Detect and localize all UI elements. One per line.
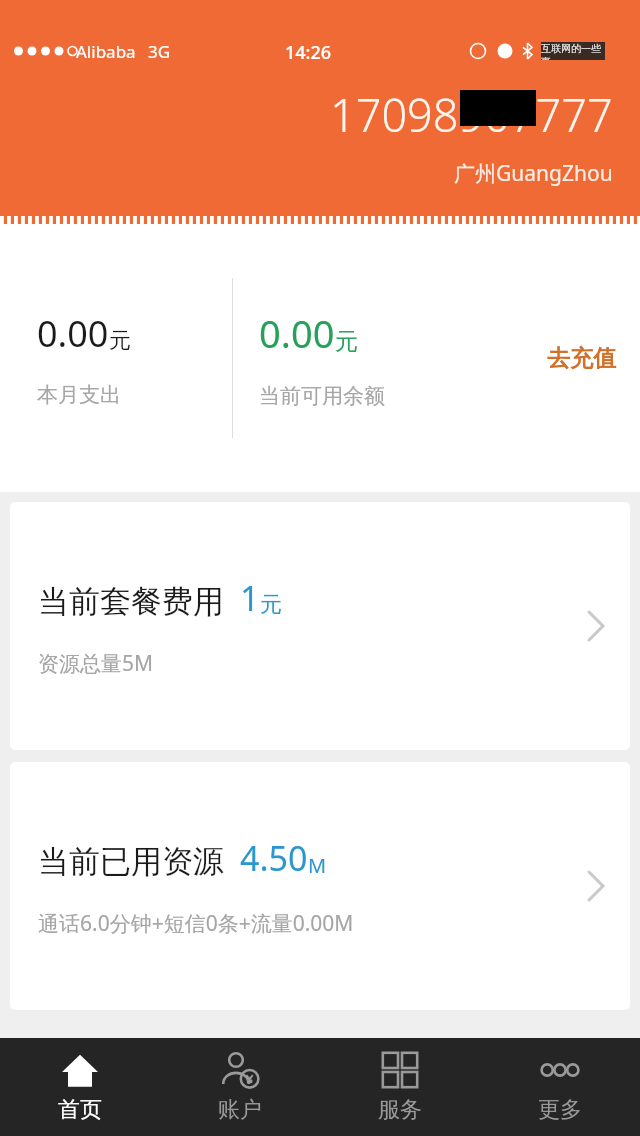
other: 更多 <box>540 1050 580 1090</box>
staticText: 1 <box>240 575 260 621</box>
staticText: 更多 <box>538 1096 582 1124</box>
staticText: 3G <box>148 40 171 62</box>
other: 首页 <box>60 1050 100 1090</box>
staticText: 4.50 <box>240 835 308 881</box>
staticText: 通话6.0分钟+短信0条+流量0.00M <box>38 909 354 938</box>
staticText: 当前套餐费用 <box>38 582 224 621</box>
button[interactable]: 服务 <box>320 1038 480 1136</box>
staticText: 当前可用余额 <box>259 383 385 409</box>
staticText: 本月支出 <box>37 382 121 408</box>
button[interactable]: 账户 <box>160 1038 320 1136</box>
staticText: 去充值 <box>547 344 616 373</box>
staticText: 0.00 <box>37 309 109 358</box>
staticText: 服务 <box>378 1096 422 1124</box>
staticText: Alibaba <box>76 40 136 62</box>
staticText: 元 <box>109 327 131 355</box>
staticText: 广州GuangZhou <box>454 159 613 188</box>
staticText: 资源总量5M <box>38 649 154 678</box>
button[interactable]: 当前套餐费用 <box>10 502 630 750</box>
staticText: 元 <box>335 327 358 356</box>
button[interactable]: 首页 <box>0 1038 160 1136</box>
staticText: 账户 <box>218 1096 262 1124</box>
staticText: 14:26 <box>285 40 332 62</box>
staticText: 首页 <box>58 1096 102 1124</box>
staticText: 0.00 <box>259 307 335 359</box>
staticText: 元 <box>260 591 282 619</box>
button[interactable]: 当前已用资源 <box>10 762 630 1010</box>
staticText: M <box>308 852 327 879</box>
staticText: 互联网的一些事 <box>541 42 605 60</box>
button[interactable]: 更多 <box>480 1038 640 1136</box>
other: 服务 <box>380 1050 420 1090</box>
staticText: 17098907777 <box>330 84 613 145</box>
staticText: 当前已用资源 <box>38 842 224 881</box>
button[interactable]: 去充值 <box>539 330 640 387</box>
other: 账户 <box>220 1050 260 1090</box>
